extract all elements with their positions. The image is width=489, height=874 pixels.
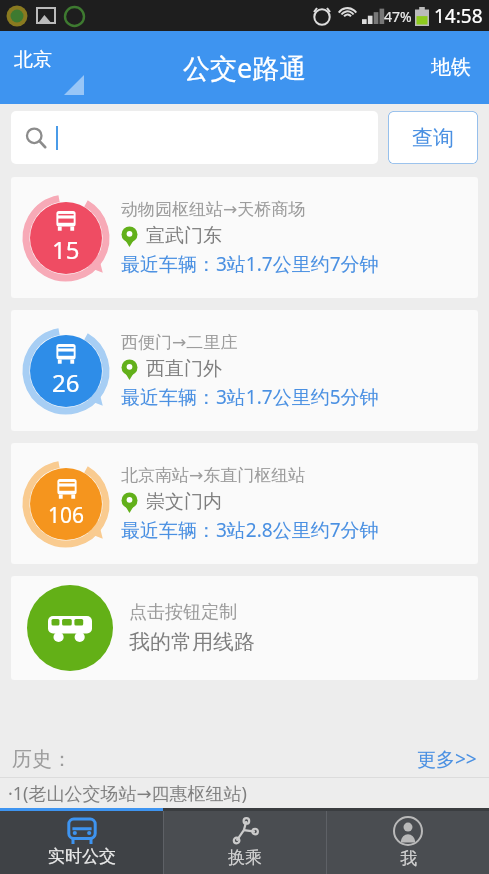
button[interactable]: 查询 bbox=[388, 111, 478, 164]
button[interactable]: 换乘 bbox=[164, 811, 326, 874]
button[interactable]: 地铁 bbox=[413, 31, 489, 104]
staticText: 最近车辆：3站2.8公里约7分钟 bbox=[121, 517, 379, 543]
button[interactable]: 更多>> bbox=[405, 742, 489, 776]
button[interactable]: 15 bbox=[11, 177, 478, 298]
staticText: ·1(老山公交场站→四惠枢纽站) bbox=[8, 781, 248, 806]
staticText: 最近车辆：3站1.7公里约5分钟 bbox=[121, 384, 379, 410]
staticText: 26 bbox=[52, 366, 80, 399]
staticText: 14:58 bbox=[434, 3, 483, 29]
staticText: 点击按钮定制 bbox=[129, 601, 237, 624]
staticText: 历史： bbox=[12, 747, 72, 772]
button[interactable]: 26 bbox=[11, 310, 478, 431]
staticText: 查询 bbox=[412, 125, 454, 151]
staticText: 我 bbox=[400, 848, 417, 869]
staticText: 西便门→二里庄 bbox=[121, 332, 238, 353]
staticText: 西直门外 bbox=[146, 357, 222, 381]
staticText: 公交e路通 bbox=[183, 49, 307, 86]
staticText: 更多>> bbox=[417, 746, 477, 772]
staticText: 北京 bbox=[14, 48, 52, 72]
staticText: 地铁 bbox=[431, 55, 471, 80]
staticText: 最近车辆：3站1.7公里约7分钟 bbox=[121, 251, 379, 277]
staticText: 宣武门东 bbox=[146, 224, 222, 248]
staticText: 实时公交 bbox=[48, 846, 116, 867]
staticText: 我的常用线路 bbox=[129, 629, 255, 655]
button[interactable]: ·1(老山公交场站→四惠枢纽站) bbox=[0, 778, 489, 808]
staticText: 47% bbox=[384, 7, 412, 26]
staticText: 106 bbox=[48, 501, 85, 530]
button[interactable]: 106 bbox=[11, 443, 478, 564]
button[interactable]: 我 bbox=[327, 811, 489, 874]
staticText: 北京南站→东直门枢纽站 bbox=[121, 465, 306, 486]
button[interactable]: 实时公交 bbox=[0, 811, 163, 874]
staticText: 崇文门内 bbox=[146, 490, 222, 514]
button[interactable]: 北京 bbox=[0, 31, 96, 104]
button[interactable]: 点击按钮定制 bbox=[11, 576, 478, 680]
button[interactable] bbox=[11, 111, 378, 164]
staticText: 15 bbox=[52, 233, 80, 266]
staticText: 动物园枢纽站→天桥商场 bbox=[121, 199, 306, 220]
staticText: 换乘 bbox=[228, 847, 262, 868]
